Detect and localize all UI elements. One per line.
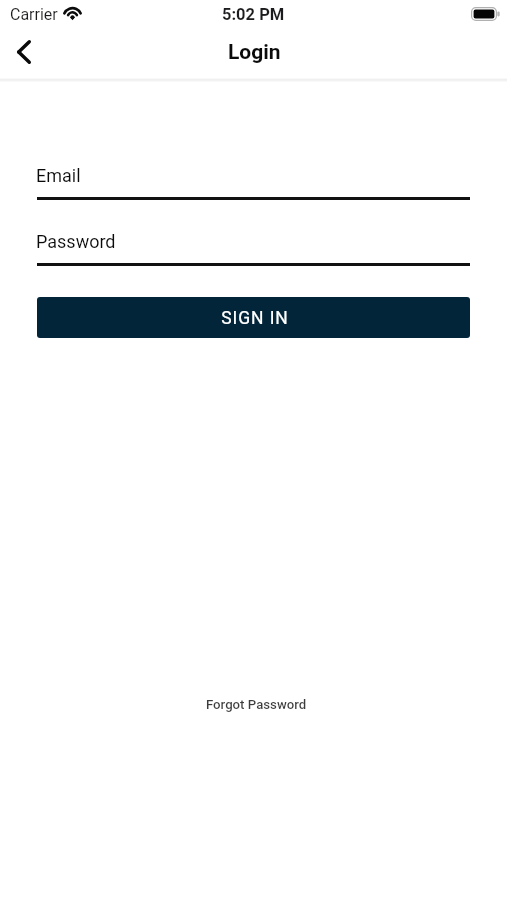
staticText: Email (36, 165, 81, 186)
staticText: Login (228, 40, 281, 65)
staticText: 5:02 PM (222, 5, 285, 24)
button[interactable]: Forgot Password (206, 697, 307, 712)
staticText: Carrier (10, 5, 58, 24)
button[interactable]: Password (37, 224, 470, 266)
staticText: SIGN IN (221, 308, 289, 329)
button[interactable]: SIGN IN (37, 297, 470, 338)
staticText: Password (36, 231, 116, 252)
button[interactable]: Back (2, 30, 46, 74)
button[interactable]: Email (37, 158, 470, 200)
